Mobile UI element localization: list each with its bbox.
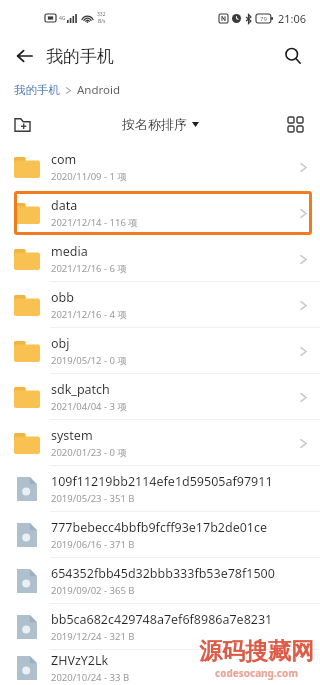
staticText: 2021/12/16 - 4 项 bbox=[51, 308, 127, 321]
button[interactable]: New folder bbox=[5, 107, 39, 141]
button[interactable]: Back bbox=[7, 39, 41, 73]
staticText: 按名称排序 bbox=[122, 116, 187, 132]
staticText: obb bbox=[51, 289, 74, 306]
staticText: 源码搜藏网 bbox=[199, 637, 314, 666]
button[interactable]: 654352fbb45d32bbb333fb53e78f1500 bbox=[0, 558, 320, 604]
button[interactable]: Grid view bbox=[278, 107, 312, 141]
staticText: com bbox=[51, 151, 77, 168]
staticText: 2021/12/14 - 116 项 bbox=[51, 216, 138, 229]
staticText: data bbox=[51, 197, 78, 214]
staticText: 2019/06/16 - 371 B bbox=[51, 538, 135, 551]
button[interactable]: 777bebecc4bbfb9fcff93e17b2de01ce bbox=[0, 512, 320, 558]
button[interactable]: 按名称排序 bbox=[122, 116, 199, 132]
staticText: 2020/01/23 - 0 项 bbox=[51, 446, 127, 459]
staticText: 2019/09/02 - 365 B bbox=[51, 584, 135, 597]
button[interactable]: Search bbox=[276, 39, 310, 73]
staticText: 2019/12/24 - 321 B bbox=[51, 630, 135, 643]
button[interactable]: Android bbox=[77, 82, 121, 98]
button[interactable]: obb bbox=[0, 282, 320, 328]
staticText: 2021/12/16 - 6 项 bbox=[51, 262, 127, 275]
staticText: 21:06 bbox=[278, 11, 307, 26]
staticText: ZHVzY2Lk bbox=[51, 652, 109, 669]
staticText: 332 bbox=[97, 11, 106, 18]
button[interactable]: sdk_patch bbox=[0, 374, 320, 420]
staticText: sdk_patch bbox=[51, 381, 110, 398]
staticText: obj bbox=[51, 335, 70, 352]
button[interactable]: system bbox=[0, 420, 320, 466]
staticText: 2020/10/24 - 33 B bbox=[51, 671, 130, 684]
button[interactable]: 109f11219bb2114efe1d59505af97911 bbox=[0, 466, 320, 512]
button[interactable]: 我的手机 bbox=[14, 83, 60, 97]
staticText: 2021/04/04 - 3 项 bbox=[51, 400, 127, 413]
staticText: B/s bbox=[98, 18, 106, 25]
staticText: 2020/11/09 - 1 项 bbox=[51, 170, 127, 183]
staticText: 654352fbb45d32bbb333fb53e78f1500 bbox=[51, 565, 275, 582]
button[interactable]: com bbox=[0, 144, 320, 190]
staticText: codesocang.com bbox=[215, 666, 298, 680]
button[interactable]: obj bbox=[0, 328, 320, 374]
staticText: system bbox=[51, 427, 93, 444]
staticText: 79 bbox=[260, 15, 267, 23]
staticText: 我的手机 bbox=[46, 46, 114, 67]
staticText: 2019/05/23 - 351 B bbox=[51, 492, 135, 505]
button[interactable]: media bbox=[0, 236, 320, 282]
staticText: 4G bbox=[59, 15, 66, 22]
staticText: 109f11219bb2114efe1d59505af97911 bbox=[51, 473, 273, 490]
staticText: 2019/05/12 - 0 项 bbox=[51, 354, 127, 367]
button[interactable]: ZHVzY2Lk bbox=[0, 650, 320, 685]
staticText: 777bebecc4bbfb9fcff93e17b2de01ce bbox=[51, 519, 268, 536]
staticText: bb5ca682c429748a7ef6f8986a7e8231 bbox=[51, 611, 273, 628]
button[interactable]: bb5ca682c429748a7ef6f8986a7e8231 bbox=[0, 604, 320, 650]
staticText: media bbox=[51, 243, 88, 260]
button[interactable]: data bbox=[0, 190, 320, 236]
